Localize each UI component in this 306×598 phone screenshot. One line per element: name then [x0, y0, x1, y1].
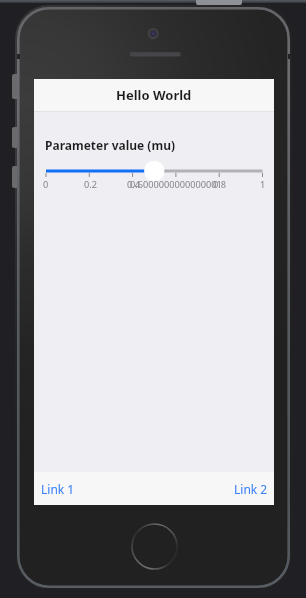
- button[interactable]: Volume up: [12, 127, 17, 148]
- button[interactable]: Link 1: [34, 476, 80, 502]
- staticText: 0: [43, 178, 49, 191]
- staticText: Link 1: [41, 481, 75, 497]
- staticText: 0.6000000000000001: [130, 178, 222, 191]
- button[interactable]: Mute switch: [12, 74, 17, 99]
- staticText: Parameter value (mu): [45, 137, 176, 153]
- staticText: Hello World: [116, 86, 192, 104]
- button[interactable]: Volume down: [12, 166, 17, 188]
- button[interactable]: Parameter value slider: [34, 160, 274, 192]
- staticText: 0.4: [127, 178, 140, 191]
- button[interactable]: Link 2: [229, 476, 274, 502]
- staticText: Link 2: [234, 481, 268, 497]
- staticText: 1: [260, 178, 266, 191]
- staticText: 0.8: [213, 178, 226, 191]
- staticText: 0.2: [84, 178, 97, 191]
